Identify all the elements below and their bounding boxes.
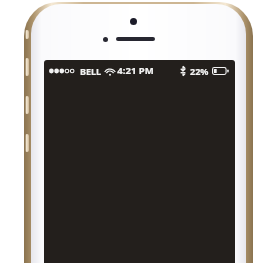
button[interactable]: Side key [25,134,29,152]
button[interactable]: BELL [49,65,115,77]
staticText: BELL [80,65,102,77]
button[interactable]: 22% [180,65,229,77]
button[interactable]: Silent switch [25,30,29,39]
button[interactable]: Volume down [25,96,29,114]
staticText: 22% [190,65,209,77]
button[interactable]: Volume up [25,58,29,76]
staticText: 4:21 PM [117,64,154,77]
